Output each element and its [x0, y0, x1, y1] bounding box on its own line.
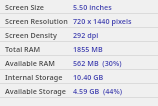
button[interactable]: Internal Storage	[0, 70, 158, 84]
button[interactable]: Available Storage	[0, 84, 158, 98]
staticText: Screen Density	[5, 30, 57, 40]
staticText: 10.40 GB	[73, 72, 104, 82]
staticText: Total RAM	[5, 44, 41, 54]
staticText: 5.50 inches	[73, 2, 112, 12]
staticText: 4.59 GB (44%)	[73, 86, 123, 96]
button[interactable]: Screen Density	[0, 28, 158, 42]
staticText: Screen Size	[5, 2, 45, 12]
staticText: 292 dpi	[73, 30, 99, 40]
button[interactable]: Total RAM	[0, 42, 158, 56]
staticText: Available Storage	[5, 86, 67, 96]
button[interactable]: Available RAM	[0, 56, 158, 70]
staticText: 562 MB (30%)	[73, 58, 122, 68]
staticText: 720 x 1440 pixels	[73, 16, 132, 26]
staticText: 1855 MB	[73, 44, 103, 54]
button[interactable]: Screen Size	[0, 0, 158, 14]
staticText: Internal Storage	[5, 72, 63, 82]
staticText: Available RAM	[5, 58, 55, 68]
staticText: Screen Resolution	[5, 16, 68, 26]
button[interactable]: Screen Resolution	[0, 14, 158, 28]
